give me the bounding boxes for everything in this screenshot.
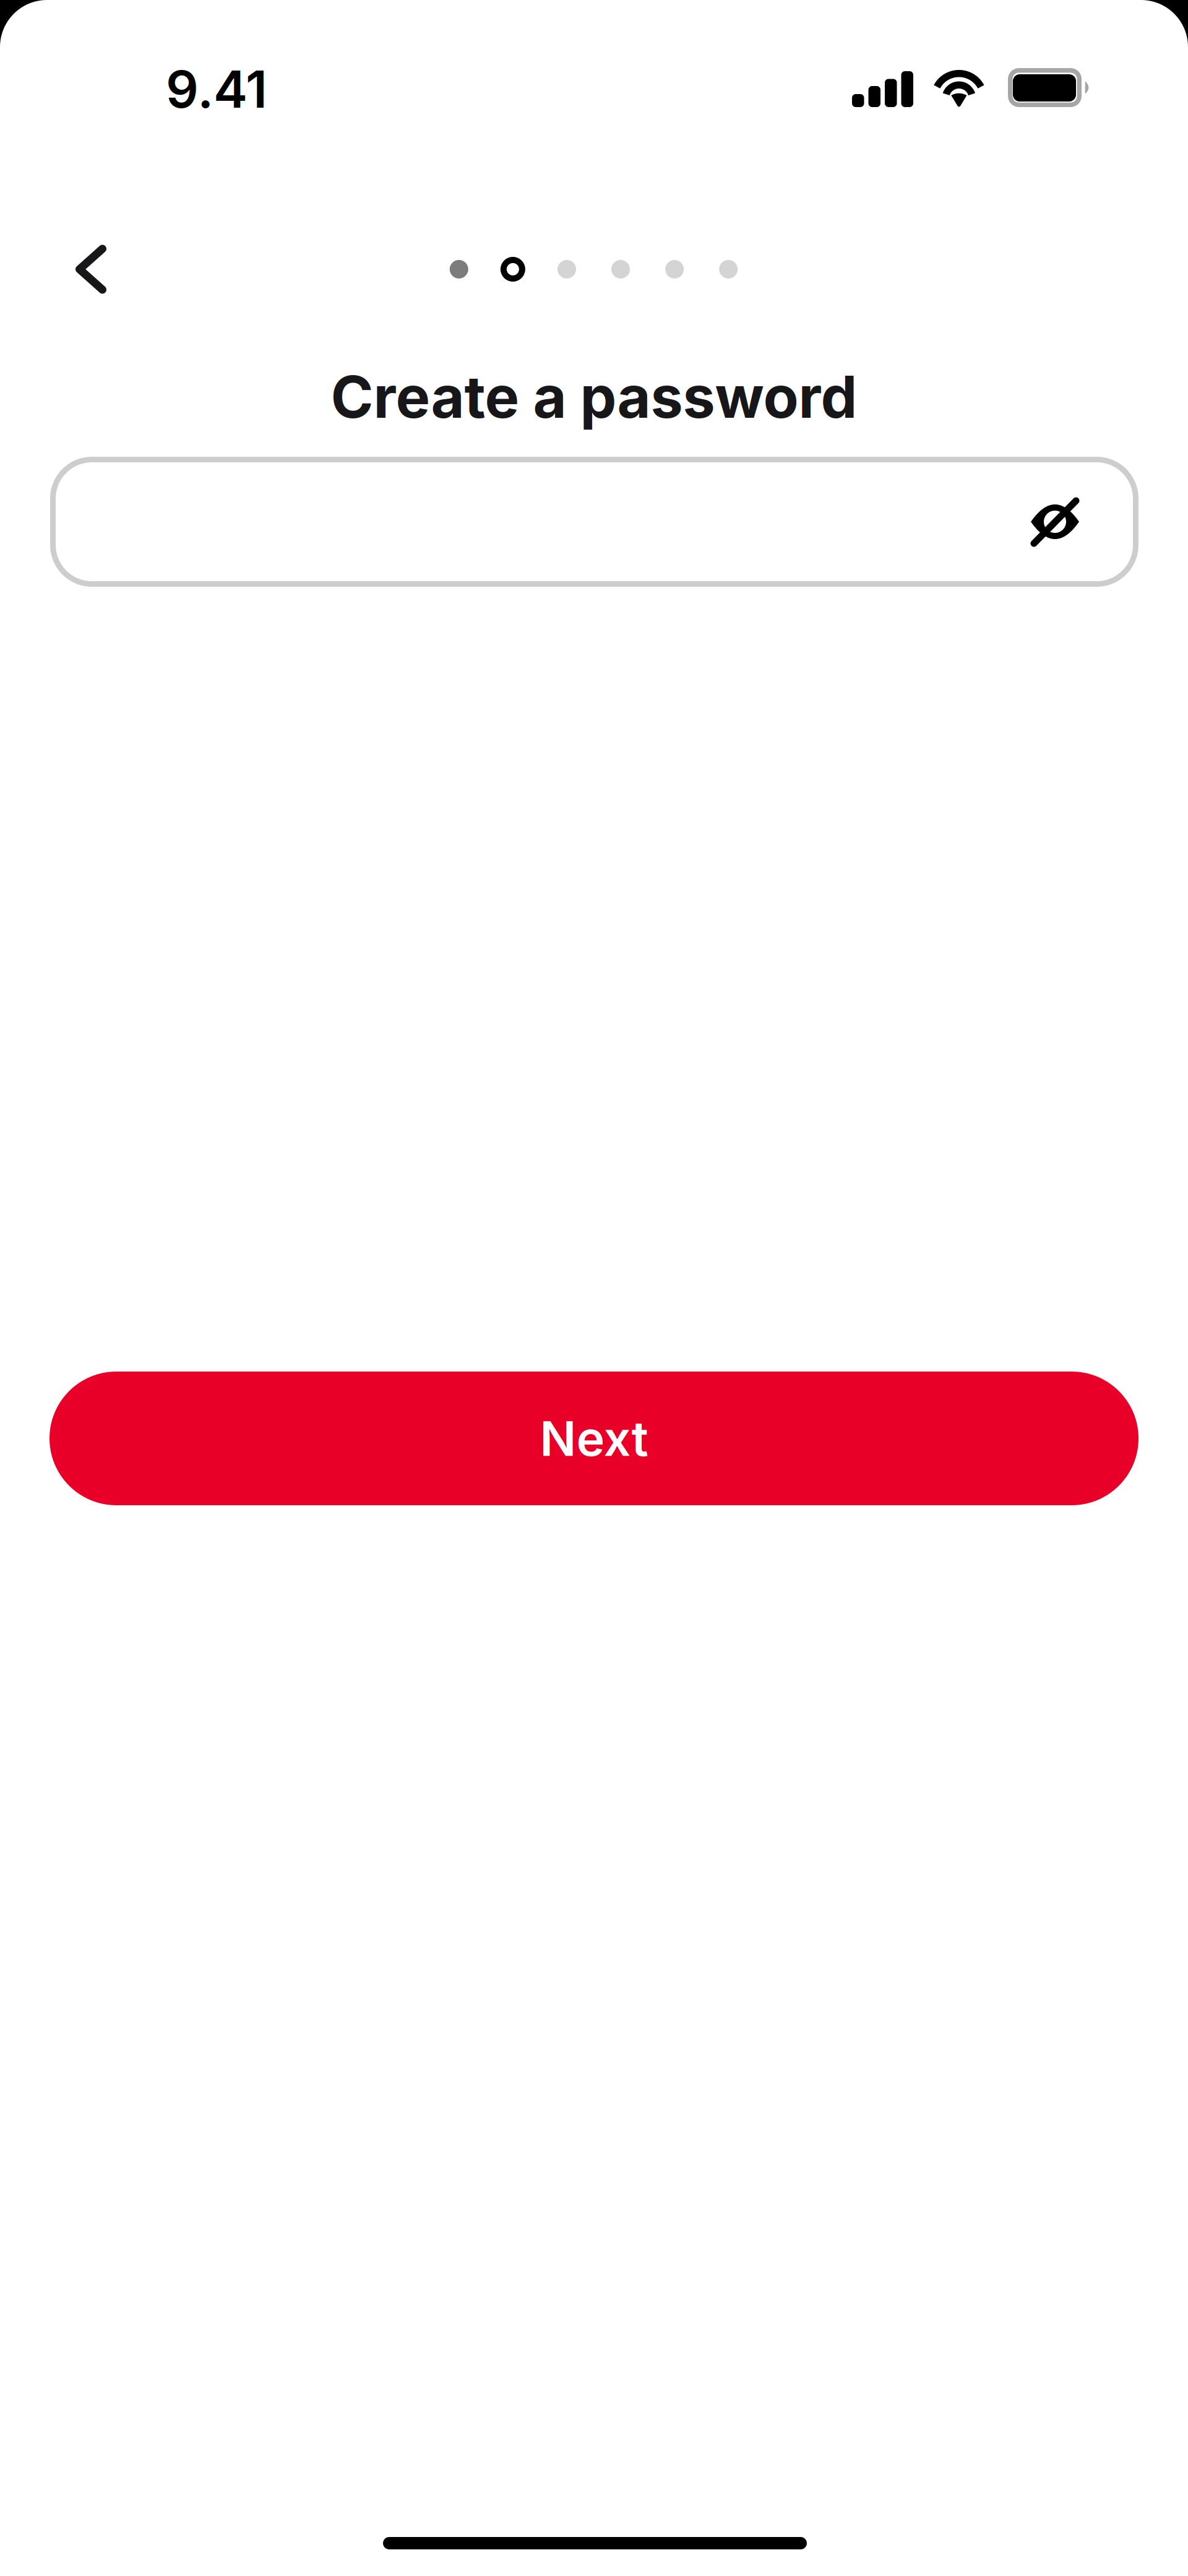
button[interactable]: Back	[75, 239, 161, 300]
staticText: Create a password	[331, 362, 857, 432]
staticText: Next	[540, 1409, 648, 1467]
button[interactable]: Next	[49, 1372, 1138, 1505]
button[interactable]: Show password	[1009, 475, 1101, 568]
staticText: 9.41	[166, 58, 267, 120]
